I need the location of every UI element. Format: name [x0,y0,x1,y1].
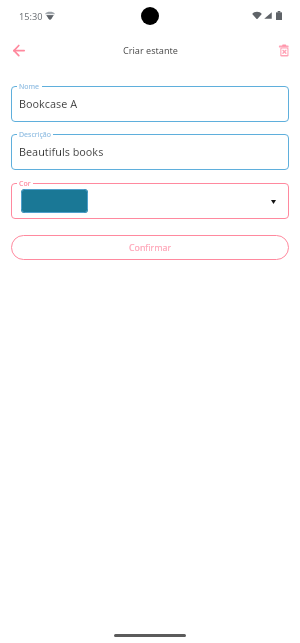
staticText: Beautifuls books [19,144,104,159]
staticText: Criar estante [123,44,178,56]
button[interactable]: Voltar [8,40,30,62]
button[interactable] [11,86,289,122]
staticText: Nome [19,82,40,92]
staticText: Descrição [19,130,51,140]
staticText: 15:30 [19,10,43,23]
button[interactable]: Confirmar [11,235,289,260]
staticText: Cor [19,179,31,189]
button[interactable]: Excluir estante [273,38,295,62]
button[interactable] [11,134,289,170]
staticText: Confirmar [129,242,172,254]
staticText: Bookcase A [19,96,78,111]
button[interactable]: Selecionar cor [11,183,289,219]
